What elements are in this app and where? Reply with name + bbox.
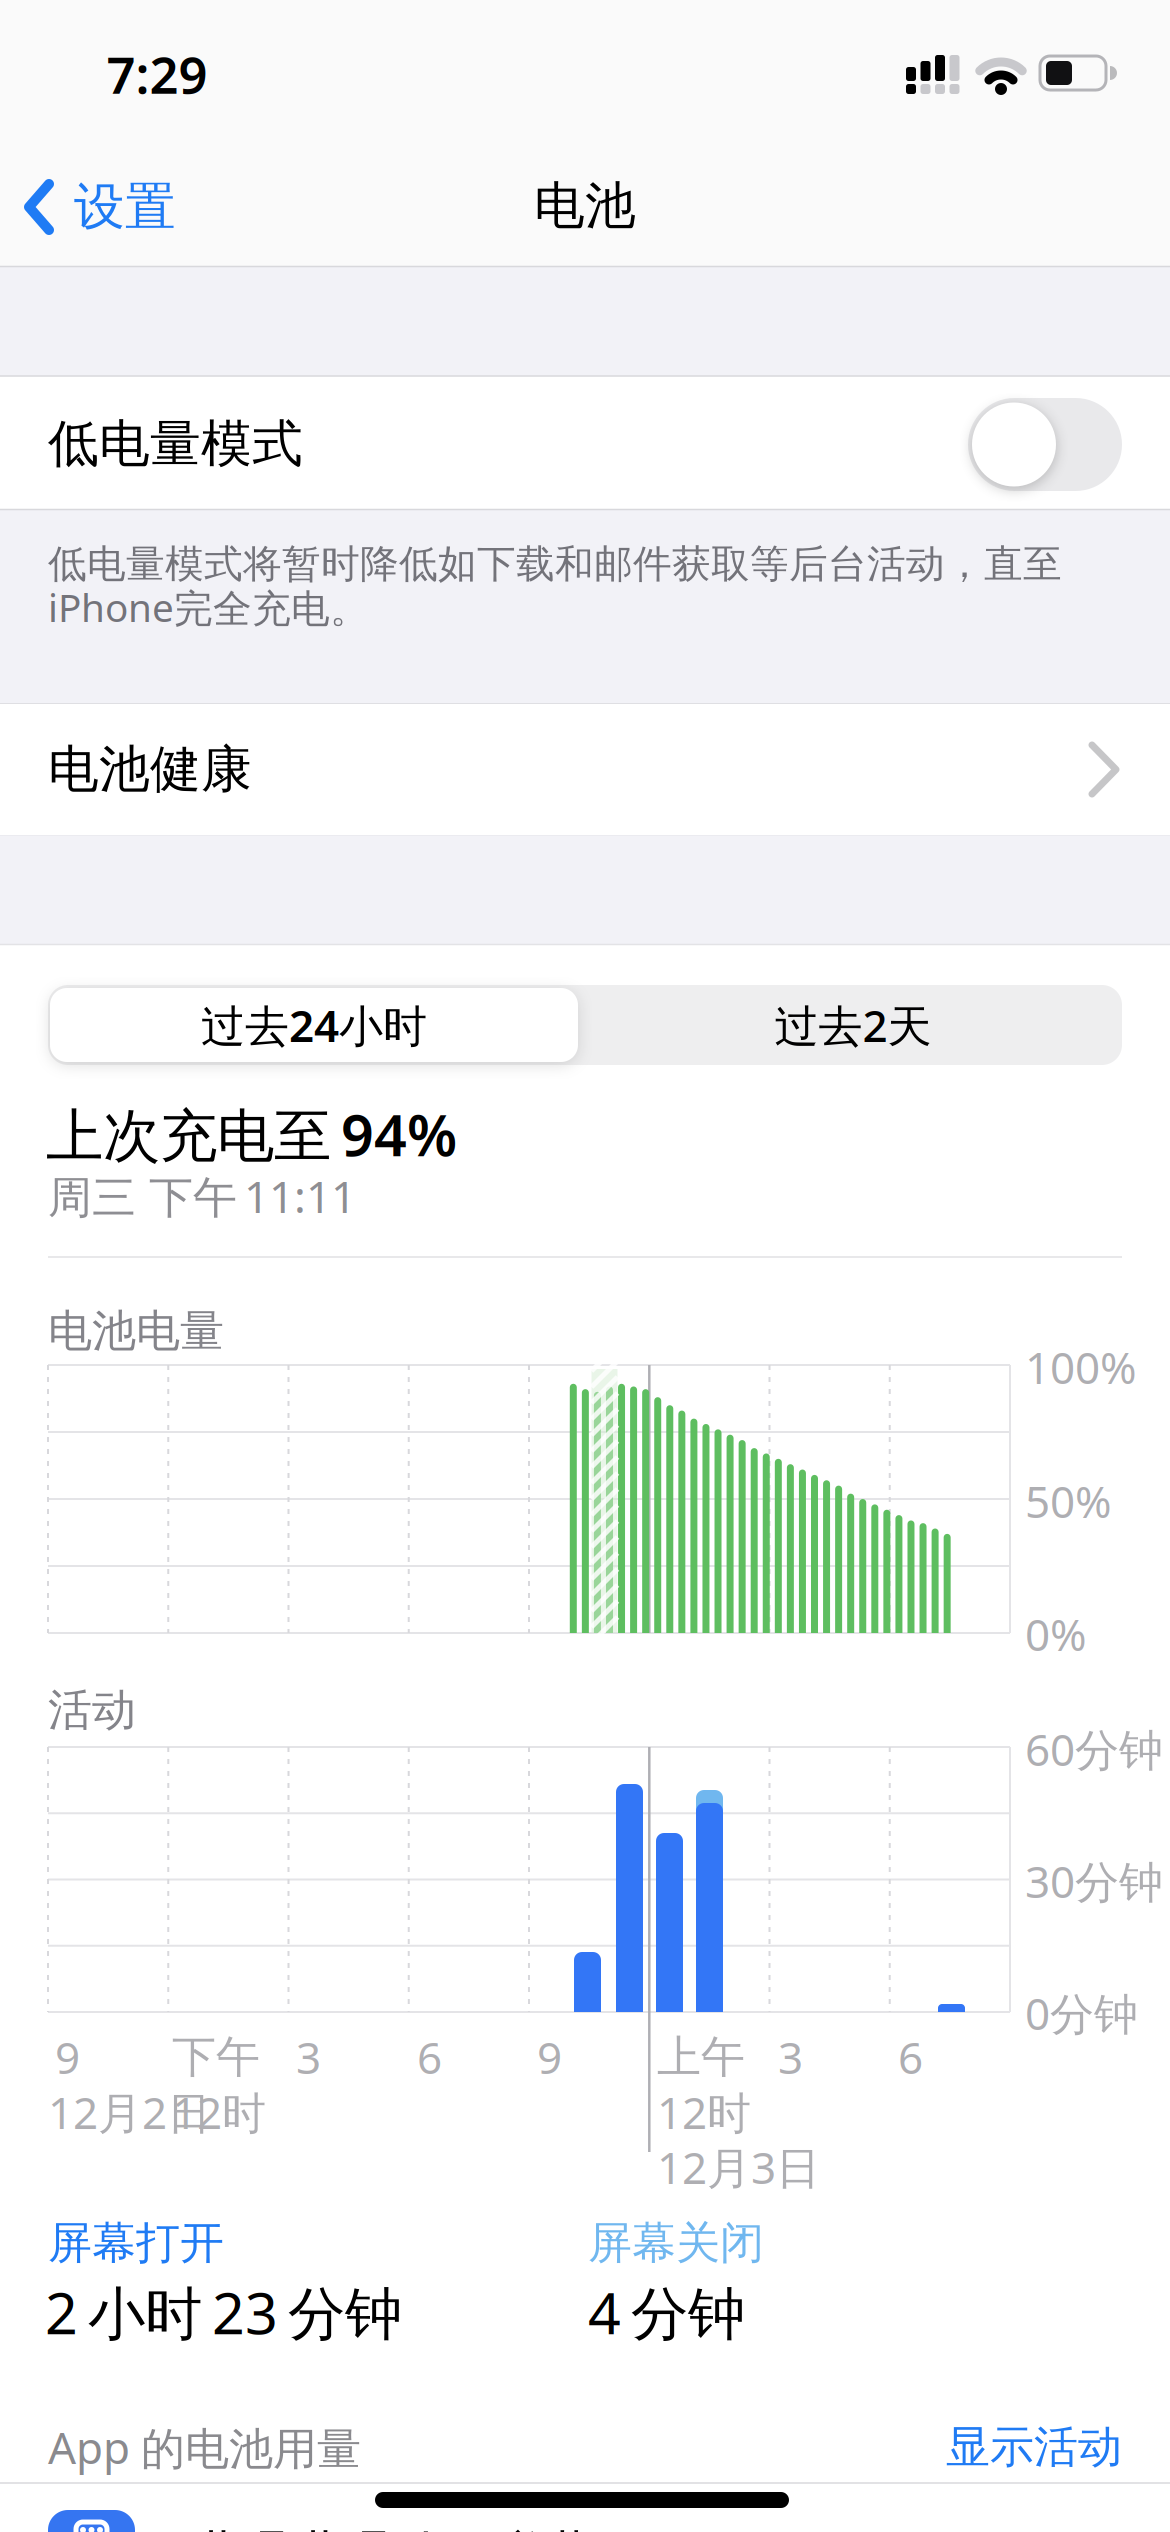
staticText: 12月2日: [48, 2083, 211, 2141]
staticText: 下午: [172, 2030, 260, 2084]
staticText: 上次充电至 94%: [46, 1096, 457, 1172]
staticText: 电池健康: [48, 738, 252, 801]
staticText: 周三 下午 11:11: [48, 1167, 356, 1225]
staticText: 上午: [657, 2030, 745, 2084]
staticText: 电池: [534, 175, 636, 237]
button[interactable]: 电池健康: [0, 704, 1170, 835]
staticText: 哔哩哔哩动画弹幕网: [188, 2524, 647, 2532]
staticText: 12时: [172, 2083, 266, 2141]
staticText: 50%: [1025, 1472, 1112, 1530]
staticText: 9: [537, 2028, 562, 2086]
staticText: 活动: [48, 1683, 136, 1737]
staticText: App 的电池用量: [48, 2418, 361, 2476]
staticText: 0分钟: [1025, 1984, 1138, 2042]
staticText: 设置: [74, 176, 176, 238]
staticText: 屏幕关闭: [588, 2216, 764, 2270]
staticText: 低电量模式将暂时降低如下载和邮件获取等后台活动，直至: [48, 540, 1062, 588]
staticText: 低电量模式: [48, 413, 303, 475]
button[interactable]: 哔哩哔哩动画弹幕网: [0, 2497, 1170, 2532]
staticText: iPhone完全充电。: [48, 581, 369, 633]
staticText: 屏幕打开: [48, 2216, 224, 2270]
button[interactable]: 低电量模式: [968, 398, 1122, 491]
staticText: 电池电量: [48, 1304, 224, 1358]
staticText: 过去24小时: [201, 996, 427, 1054]
staticText: 0%: [1025, 1605, 1087, 1663]
staticText: 3: [296, 2028, 321, 2086]
staticText: 12时: [657, 2083, 751, 2141]
staticText: 4 分钟: [588, 2274, 745, 2350]
staticText: 7:29: [106, 40, 207, 108]
staticText: 3: [778, 2028, 803, 2086]
staticText: 100%: [1025, 1338, 1137, 1396]
button[interactable]: 显示活动: [822, 2420, 1122, 2474]
staticText: 30分钟: [1025, 1852, 1163, 1910]
staticText: 显示活动: [946, 2420, 1122, 2474]
staticText: 60分钟: [1025, 1720, 1163, 1778]
staticText: 过去2天: [774, 996, 931, 1054]
staticText: 2 小时 23 分钟: [45, 2274, 402, 2350]
staticText: 12月3日: [657, 2138, 820, 2196]
button[interactable]: 过去24小时: [50, 988, 578, 1062]
staticText: 9: [55, 2028, 80, 2086]
button[interactable]: 返回设置: [26, 157, 266, 257]
staticText: 6: [417, 2028, 442, 2086]
staticText: 6: [898, 2028, 923, 2086]
button[interactable]: 过去2天: [593, 988, 1113, 1062]
